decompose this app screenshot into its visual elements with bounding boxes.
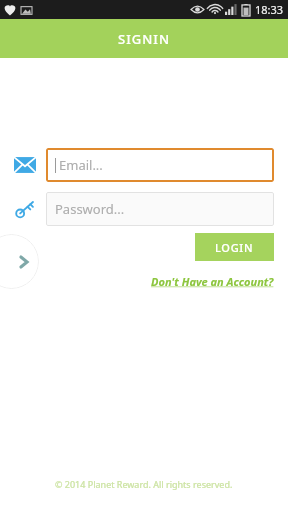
staticText: 18:33 <box>255 2 284 17</box>
staticText: LOGIN <box>215 240 254 255</box>
other: Password <box>14 198 36 220</box>
staticText: Password... <box>55 200 125 218</box>
button[interactable]: Don't Have an Account? <box>151 274 274 289</box>
staticText: © 2014 Planet Reward. All rights reserve… <box>55 478 233 490</box>
other: Email <box>14 154 36 176</box>
staticText: Don't Have an Account? <box>151 274 274 289</box>
button[interactable]: Password... <box>46 192 274 226</box>
staticText: Email... <box>59 156 103 174</box>
button[interactable]: Open menu <box>0 234 39 289</box>
button[interactable]: LOGIN <box>195 233 274 261</box>
staticText: SIGNIN <box>118 30 170 48</box>
button[interactable]: Email... <box>46 148 274 182</box>
